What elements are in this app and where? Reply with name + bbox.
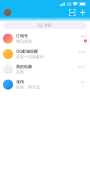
staticText: 昨天 (81, 35, 87, 38)
staticText: 张伟 (16, 79, 24, 84)
staticText: 腾讯新闻 (16, 39, 32, 44)
button[interactable]: 搜索 (0, 22, 90, 31)
button[interactable]: QQ邮箱提醒 (0, 46, 90, 62)
staticText: 星期三 (78, 50, 87, 53)
staticText: 在线 (16, 69, 24, 74)
staticText: 5G (66, 1, 71, 7)
staticText: 3 (84, 39, 86, 43)
staticText: QQ邮箱提醒 (16, 49, 38, 54)
staticText: 好的，明天见 (16, 85, 40, 90)
button[interactable]: Add (79, 9, 86, 16)
staticText: 您有一封新邮件 (16, 54, 44, 59)
button[interactable]: Scan (69, 9, 75, 16)
staticText: 周一 (81, 81, 87, 84)
button[interactable]: 张伟 (0, 77, 90, 92)
button[interactable]: Profile (4, 9, 11, 16)
staticText: 订阅号 (16, 33, 28, 38)
staticText: 我的电脑 (16, 64, 32, 69)
button[interactable]: 订阅号 (0, 31, 90, 46)
staticText: 搜索 (44, 23, 52, 28)
staticText: 星期二 (78, 65, 87, 69)
button[interactable]: 我的电脑 (0, 62, 90, 77)
